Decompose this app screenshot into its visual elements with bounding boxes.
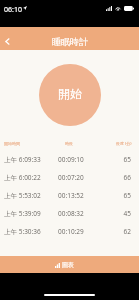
staticText: 00:09:10 [58, 155, 117, 164]
staticText: 上午 5:53:02 [4, 191, 58, 200]
staticText: 圖表 [62, 261, 74, 269]
button[interactable]: 上午 5:39:09 [0, 204, 139, 222]
staticText: 上午 6:09:33 [4, 155, 58, 164]
button[interactable]: Back [0, 31, 17, 51]
staticText: 睡眠時計 [52, 36, 88, 47]
staticText: 00:07:20 [58, 173, 117, 182]
staticText: 65 [117, 191, 131, 200]
staticText: 上午 5:30:36 [4, 227, 58, 236]
staticText: 00:08:32 [58, 209, 117, 218]
staticText: 45 [117, 209, 131, 218]
button[interactable]: 開始 [39, 64, 101, 126]
staticText: 62 [117, 227, 131, 236]
staticText: 00:10:29 [58, 227, 117, 236]
staticText: 時長 [65, 141, 73, 146]
staticText: 上午 5:39:09 [4, 209, 58, 218]
staticText: 長度 (分) [116, 141, 132, 146]
button[interactable]: 上午 6:00:22 [0, 168, 139, 186]
staticText: 65 [117, 155, 131, 164]
button[interactable]: 上午 6:09:33 [0, 150, 139, 168]
button[interactable]: 圖表 [0, 256, 139, 273]
staticText: 開始 [58, 86, 82, 101]
staticText: 00:13:52 [58, 191, 117, 200]
staticText: 06:10 [4, 5, 22, 15]
staticText: 上午 6:00:22 [4, 173, 58, 182]
button[interactable]: 上午 5:53:02 [0, 186, 139, 204]
button[interactable]: 上午 5:30:36 [0, 222, 139, 240]
staticText: 66 [117, 173, 131, 182]
staticText: 開始時間 [4, 141, 20, 146]
